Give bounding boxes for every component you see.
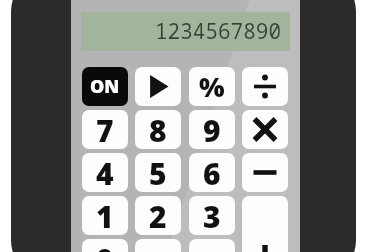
staticText: 0 [96,239,114,252]
staticText: 5 [149,153,167,192]
staticText: 7 [96,110,114,149]
staticText: 1234567890 [155,17,281,46]
button[interactable]: Multiply [242,110,288,149]
button[interactable]: Decimal point [135,239,181,252]
button[interactable]: Plus [242,196,288,252]
button[interactable]: 0 [82,239,128,252]
button[interactable]: Divide [242,67,288,106]
button[interactable]: On [82,67,128,106]
staticText: ON [90,74,120,99]
button[interactable]: 7 [82,110,128,149]
staticText: 1 [96,196,114,235]
button[interactable]: 5 [135,153,181,192]
button[interactable]: Play [135,67,181,106]
staticText: 4 [96,153,114,192]
button[interactable]: Percent [189,67,235,106]
staticText: 2 [149,196,167,235]
button[interactable]: 8 [135,110,181,149]
button[interactable]: 4 [82,153,128,192]
staticText: 6 [203,153,221,192]
staticText: % [199,68,225,105]
button[interactable]: 1 [82,196,128,235]
button[interactable]: 2 [135,196,181,235]
button[interactable]: Minus [242,153,288,192]
button[interactable]: 9 [189,110,235,149]
staticText: 8 [149,110,167,149]
staticText: 3 [203,196,221,235]
button[interactable]: Equals [189,239,235,252]
button[interactable]: 3 [189,196,235,235]
staticText: 9 [203,110,221,149]
button[interactable]: 6 [189,153,235,192]
